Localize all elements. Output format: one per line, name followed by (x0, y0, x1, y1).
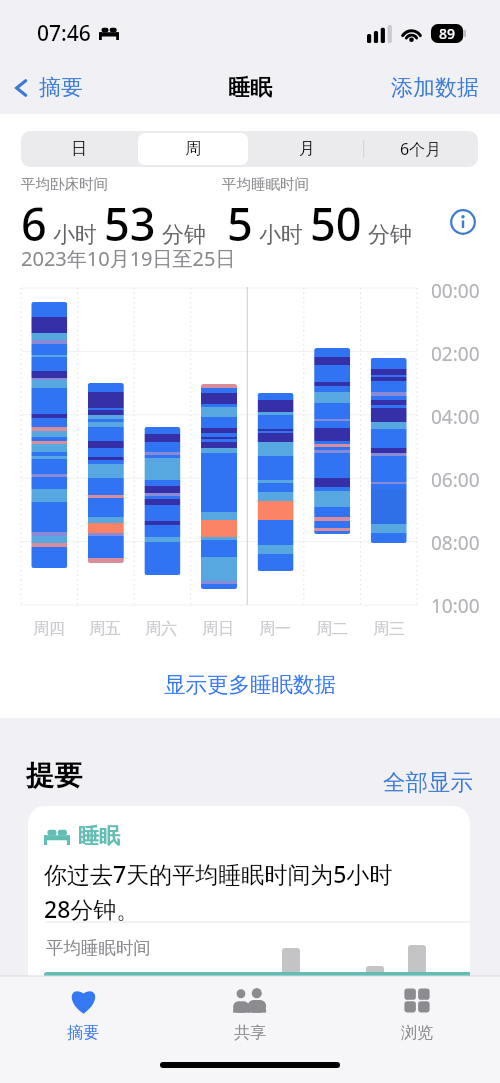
staticText: 89 (439, 24, 456, 43)
staticText: 睡眠 (78, 823, 120, 849)
staticText: 06:00 (431, 467, 480, 493)
staticText: 周一 (259, 619, 291, 639)
staticText: 周六 (145, 619, 177, 639)
button[interactable]: 6个月 (366, 133, 476, 165)
staticText: 周三 (373, 619, 405, 639)
button[interactable]: 日 (23, 133, 134, 165)
button[interactable]: 信息 (450, 209, 476, 235)
staticText: 分钟 (162, 221, 206, 249)
staticText: 小时 (259, 221, 303, 249)
staticText: 提要 (26, 758, 82, 793)
button[interactable]: 摘要 (8, 74, 83, 102)
button[interactable]: 月 (252, 133, 362, 165)
staticText: 睡眠 (228, 74, 272, 102)
staticText: 00:00 (431, 278, 480, 304)
staticText: 添加数据 (391, 74, 479, 102)
staticText: 10:00 (431, 593, 480, 619)
staticText: 周二 (316, 619, 348, 639)
staticText: 平均卧床时间 (21, 175, 222, 193)
staticText: 08:00 (431, 530, 480, 556)
staticText: 共享 (234, 1023, 266, 1043)
staticText: 全部显示 (383, 768, 473, 796)
staticText: 摘要 (67, 1023, 99, 1043)
button[interactable]: 显示更多睡眠数据 (0, 671, 500, 698)
staticText: 周四 (33, 619, 65, 639)
button[interactable]: 周 (138, 133, 248, 165)
button[interactable]: 浏览 (333, 977, 500, 1049)
staticText: 02:00 (431, 341, 480, 367)
staticText: 04:00 (431, 404, 480, 430)
button[interactable]: 添加数据 (391, 74, 479, 102)
staticText: 浏览 (401, 1023, 433, 1043)
staticText: 6 (21, 193, 47, 254)
staticText: 6个月 (400, 138, 442, 160)
staticText: 周日 (202, 619, 234, 639)
staticText: 你过去7天的平均睡眠时间为5小时28分钟。 (44, 858, 404, 925)
staticText: 摘要 (39, 74, 83, 102)
staticText: 周五 (89, 619, 121, 639)
button[interactable]: 全部显示 (383, 768, 473, 796)
staticText: 53 (104, 193, 156, 254)
staticText: 50 (310, 193, 362, 254)
staticText: 2023年10月19日至25日 (21, 245, 236, 272)
staticText: 显示更多睡眠数据 (164, 671, 336, 698)
button[interactable]: 睡眠 (28, 806, 470, 1056)
staticText: 07:46 (37, 19, 91, 48)
button[interactable]: 摘要 (0, 977, 166, 1049)
staticText: 小时 (53, 221, 97, 249)
staticText: 分钟 (368, 221, 412, 249)
staticText: 日 (71, 139, 87, 159)
staticText: 平均睡眠时间 (46, 937, 151, 959)
staticText: 平均睡眠时间 (222, 175, 309, 193)
staticText: 5 (227, 193, 253, 254)
staticText: 月 (299, 139, 315, 159)
staticText: 周 (185, 139, 201, 159)
button[interactable]: 共享 (166, 977, 333, 1049)
